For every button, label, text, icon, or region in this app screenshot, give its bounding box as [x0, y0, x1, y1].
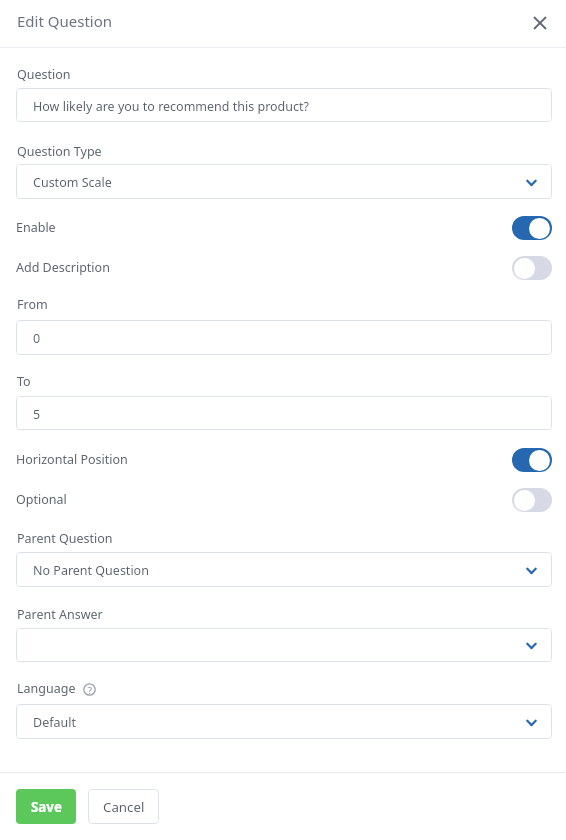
button[interactable]: Optional	[16, 479, 553, 519]
button[interactable]: 5	[16, 396, 552, 430]
staticText: Parent Question	[17, 530, 113, 547]
staticText: Enable	[16, 219, 56, 236]
staticText: Language	[17, 680, 76, 697]
staticText: From	[17, 296, 48, 313]
staticText: Optional	[16, 491, 67, 508]
button[interactable]: 0	[16, 320, 552, 355]
button[interactable]: Default	[16, 704, 552, 739]
staticText: How likely are you to recommend this pro…	[33, 98, 309, 115]
staticText: 0	[33, 330, 41, 347]
staticText: Custom Scale	[33, 174, 112, 191]
button[interactable]: Close	[528, 11, 552, 35]
staticText: Question Type	[17, 143, 102, 160]
button[interactable]: No Parent Question	[16, 552, 552, 587]
staticText: To	[17, 373, 31, 390]
button[interactable]: Horizontal Position	[16, 439, 553, 479]
button[interactable]: Cancel	[88, 789, 159, 824]
staticText: Save	[31, 798, 62, 816]
button[interactable]: How likely are you to recommend this pro…	[16, 88, 552, 122]
staticText: ?	[88, 684, 92, 696]
button[interactable]: Help	[83, 683, 96, 696]
staticText: Edit Question	[17, 11, 113, 31]
staticText: Default	[33, 714, 76, 731]
button[interactable]: Add Description	[16, 247, 553, 287]
button[interactable]: Enable	[16, 207, 553, 247]
staticText: Question	[17, 66, 71, 83]
staticText: Parent Answer	[17, 606, 103, 623]
button[interactable]	[16, 628, 552, 662]
staticText: Cancel	[103, 798, 145, 816]
button[interactable]: Custom Scale	[16, 164, 552, 199]
button[interactable]: Save	[16, 789, 76, 824]
staticText: Horizontal Position	[16, 451, 128, 468]
staticText: 5	[33, 406, 41, 423]
staticText: Add Description	[16, 259, 110, 276]
staticText: No Parent Question	[33, 562, 149, 579]
